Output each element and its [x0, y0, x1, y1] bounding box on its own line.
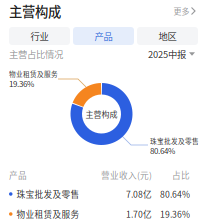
staticText: 珠宝批发及零售 — [150, 136, 199, 146]
staticText: 19.36% — [160, 208, 190, 220]
staticText: 主营占比情况 — [9, 47, 63, 61]
staticText: 营业收入(元) — [101, 169, 152, 181]
staticText: 产品 — [94, 29, 112, 43]
staticText: 地区 — [158, 29, 176, 43]
staticText: 1.70亿 — [126, 208, 152, 220]
staticText: 80.64% — [150, 145, 175, 156]
button[interactable]: 更多 — [173, 5, 195, 17]
staticText: 主营构成 — [9, 1, 61, 21]
staticText: 行业 — [30, 29, 48, 43]
button[interactable]: 产品 — [73, 27, 134, 45]
staticText: 珠宝批发及零售 — [16, 188, 79, 200]
staticText: 产品 — [9, 169, 27, 181]
staticText: 19.36% — [9, 78, 34, 89]
staticText: 2025中报 — [148, 47, 186, 61]
staticText: 物业租赁及服务 — [16, 208, 79, 220]
button[interactable]: 行业 — [9, 27, 70, 45]
staticText: 物业租赁及服务 — [9, 69, 58, 79]
staticText: 更多 — [173, 5, 189, 17]
staticText: 主营构成 — [85, 108, 117, 120]
button[interactable]: 地区 — [137, 27, 198, 45]
button[interactable]: 2025中报 — [148, 47, 195, 61]
staticText: 7.08亿 — [126, 188, 152, 200]
staticText: 占比 — [172, 169, 190, 181]
staticText: 80.64% — [160, 188, 190, 200]
